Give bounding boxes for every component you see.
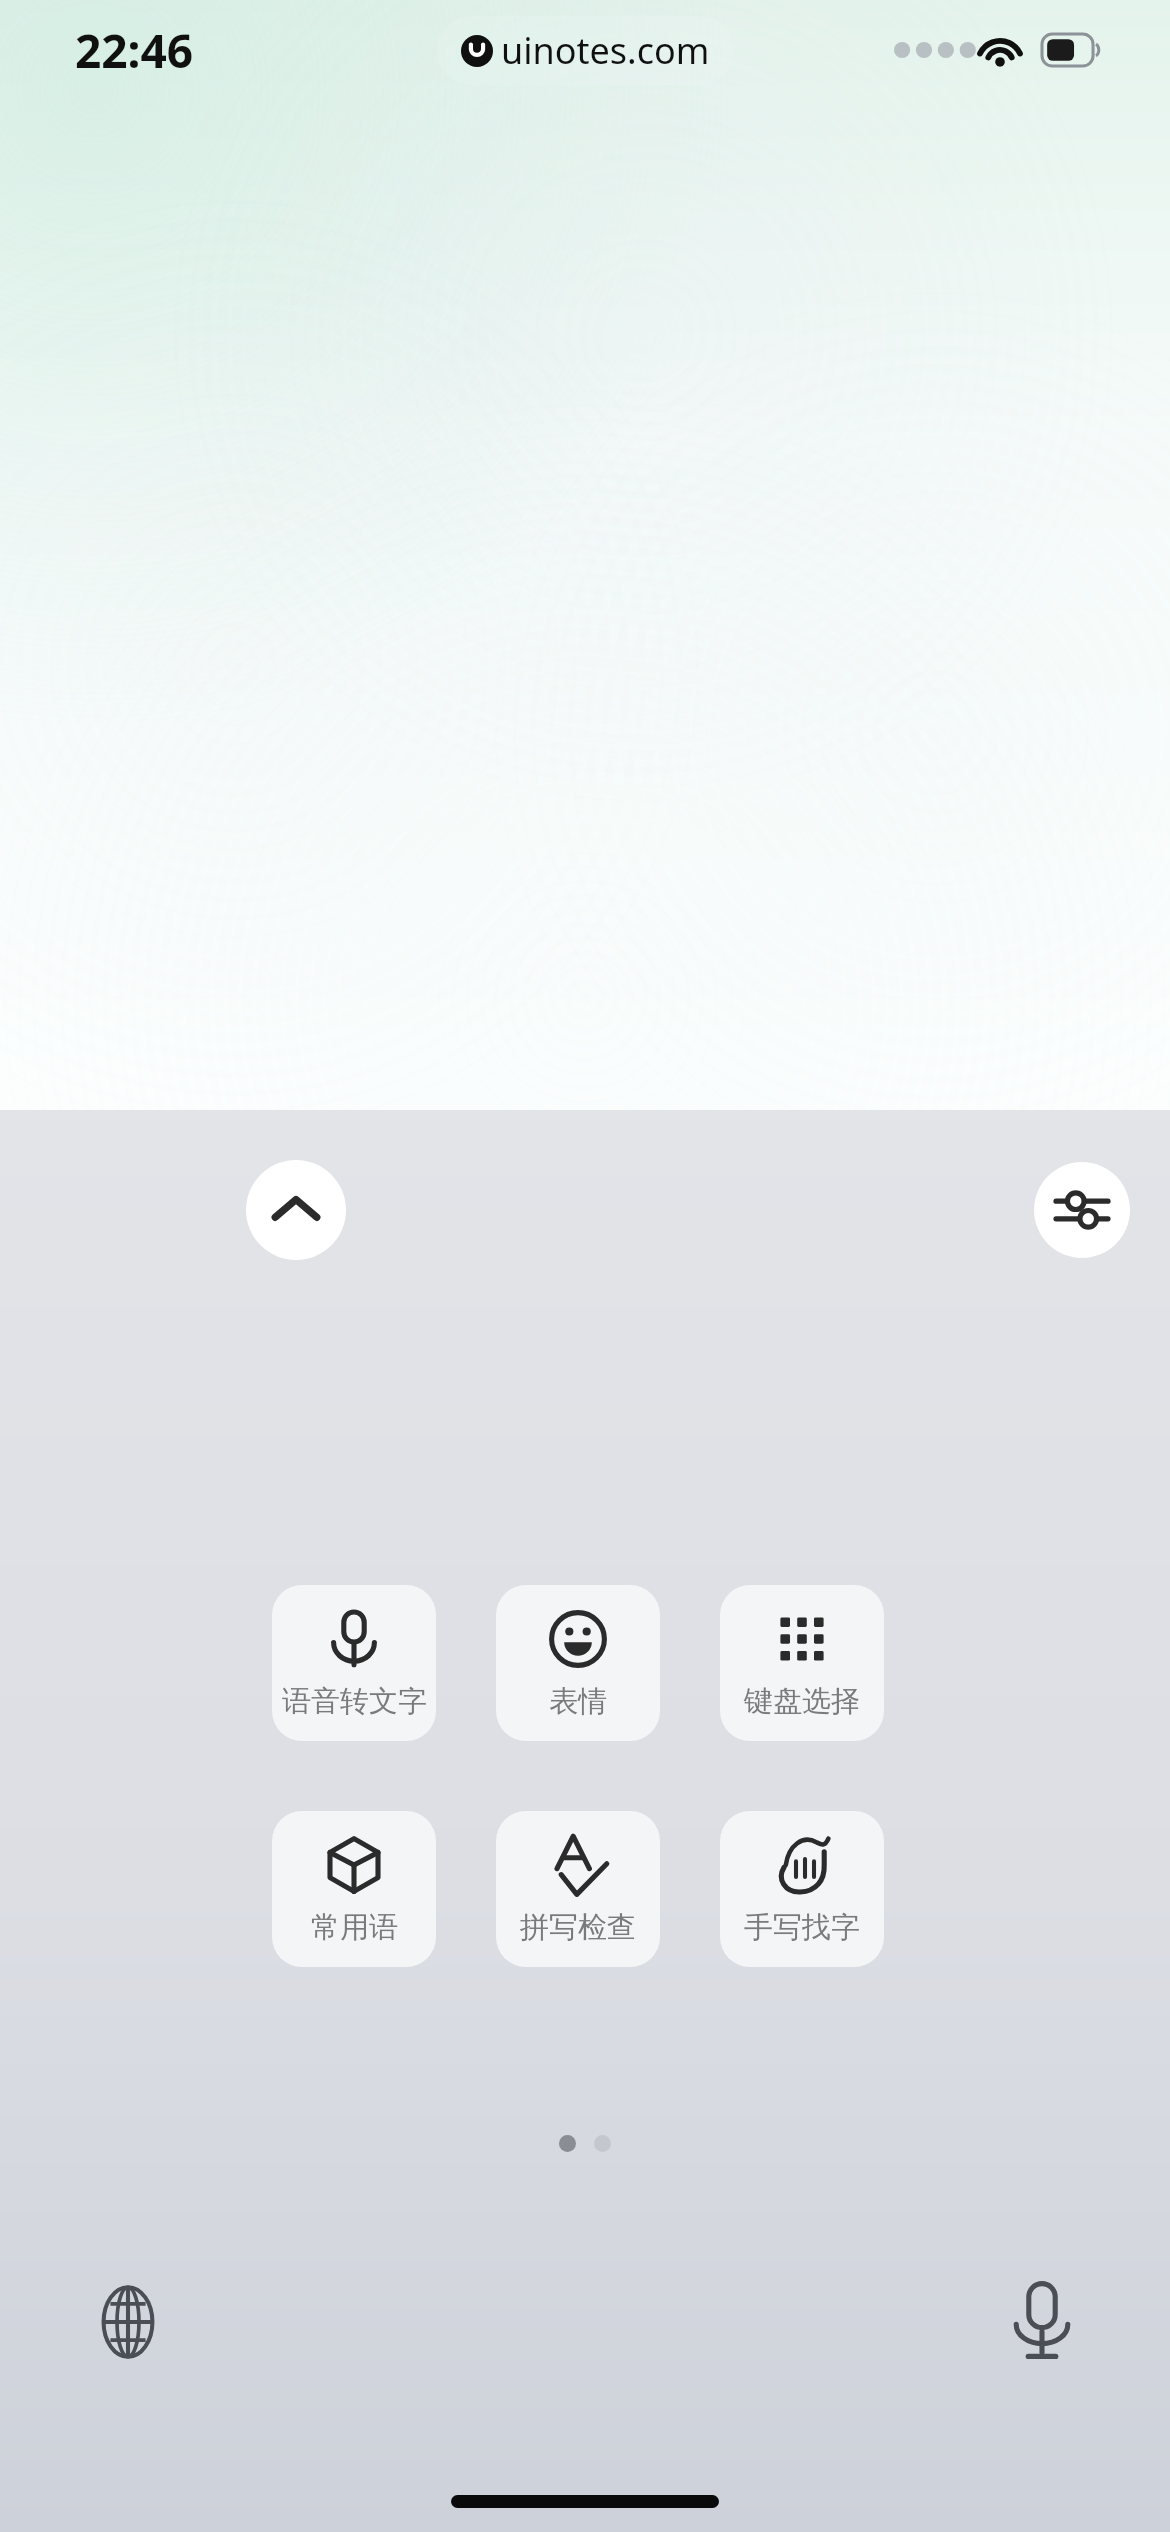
button[interactable]: 常用语 [272, 1811, 436, 1967]
button[interactable]: 表情 [496, 1585, 660, 1741]
button[interactable]: Voice input [986, 2266, 1098, 2378]
staticText: 语音转文字 [282, 1683, 427, 1720]
button[interactable]: Collapse keyboard [246, 1160, 346, 1260]
staticText: 表情 [549, 1683, 607, 1720]
staticText: uinotes.com [501, 26, 710, 75]
staticText: 常用语 [311, 1909, 398, 1946]
staticText: 22:46 [75, 19, 194, 82]
staticText: 手写找字 [744, 1909, 860, 1946]
staticText: 拼写检查 [520, 1909, 636, 1946]
button[interactable]: Switch language [72, 2266, 184, 2378]
button[interactable]: 手写找字 [720, 1811, 884, 1967]
button[interactable]: 键盘选择 [720, 1585, 884, 1741]
staticText: 键盘选择 [744, 1683, 860, 1720]
button[interactable]: Keyboard settings [1034, 1162, 1130, 1258]
button[interactable]: 拼写检查 [496, 1811, 660, 1967]
button[interactable]: 语音转文字 [272, 1585, 436, 1741]
